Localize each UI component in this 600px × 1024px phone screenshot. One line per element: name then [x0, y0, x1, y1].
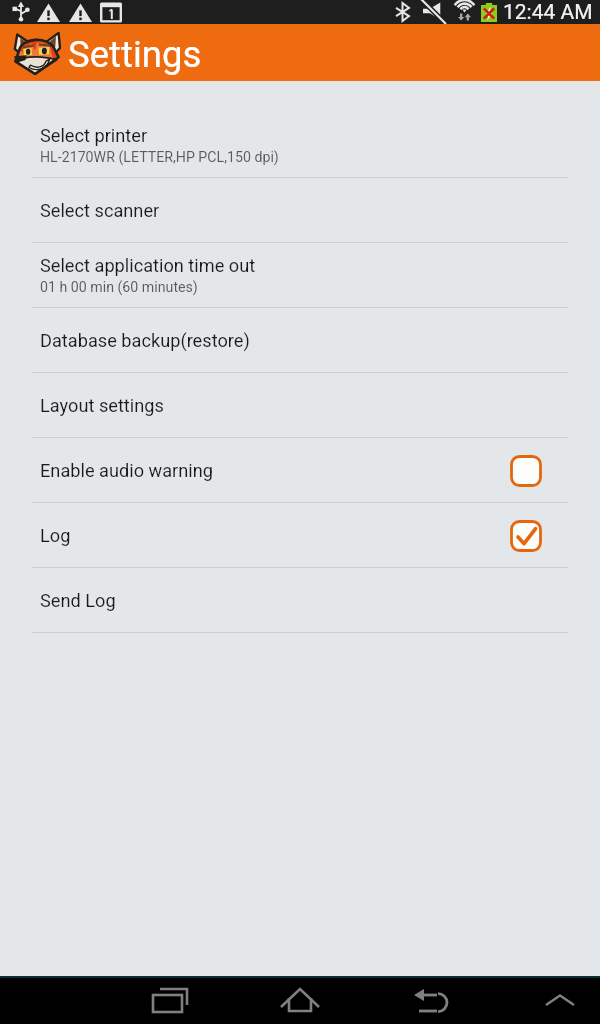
- staticText: HL-2170WR (LETTER,HP PCL,150 dpi): [40, 149, 279, 166]
- staticText: Database backup(restore): [40, 330, 250, 351]
- staticText: Send Log: [40, 590, 116, 611]
- button[interactable]: Select application time out: [0, 243, 600, 308]
- button[interactable]: Enable audio warning: [0, 438, 600, 503]
- button[interactable]: Home: [230, 976, 360, 1024]
- button[interactable]: Database backup(restore): [0, 308, 600, 373]
- staticText: Layout settings: [40, 395, 164, 416]
- button[interactable]: Select printer: [0, 113, 600, 178]
- button[interactable]: Select scanner: [0, 178, 600, 243]
- button[interactable]: Layout settings: [0, 373, 600, 438]
- staticText: Log: [40, 525, 71, 546]
- button[interactable]: Log enabled: [504, 514, 548, 558]
- button[interactable]: Back: [360, 976, 490, 1024]
- staticText: Select printer: [40, 125, 148, 146]
- staticText: 01 h 00 min (60 minutes): [40, 279, 198, 296]
- button[interactable]: Log: [0, 503, 600, 568]
- button[interactable]: Send Log: [0, 568, 600, 633]
- staticText: Enable audio warning: [40, 460, 213, 481]
- button[interactable]: Expand: [490, 976, 600, 1024]
- button[interactable]: Enable audio warning: [504, 449, 548, 493]
- staticText: Settings: [68, 33, 202, 76]
- button[interactable]: Recent apps: [110, 976, 230, 1024]
- staticText: Select scanner: [40, 200, 160, 221]
- staticText: 12:44 AM: [503, 0, 593, 24]
- staticText: Select application time out: [40, 255, 256, 276]
